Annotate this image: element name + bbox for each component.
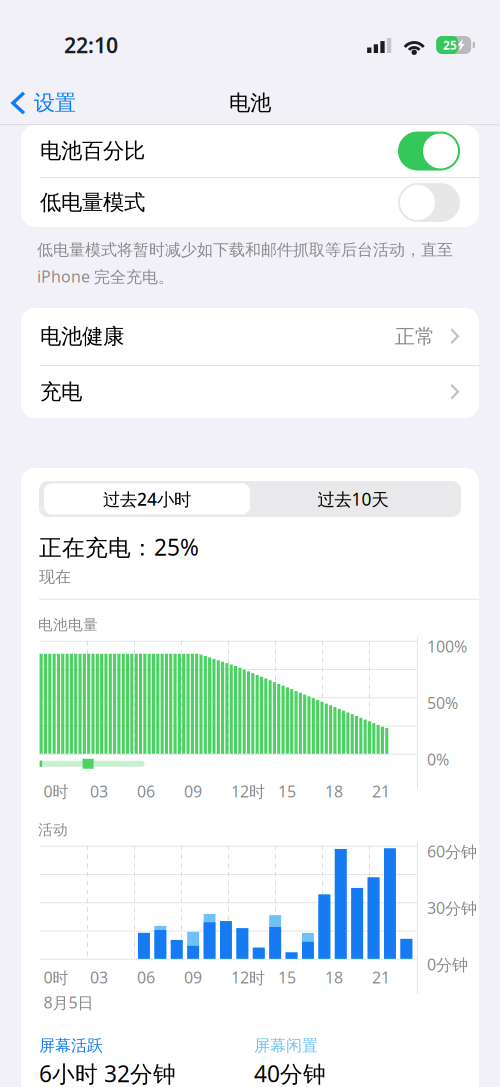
staticText: 12时 <box>231 967 265 988</box>
staticText: 60分钟 <box>427 841 477 862</box>
staticText: 03 <box>90 781 108 802</box>
staticText: 03 <box>90 967 108 988</box>
staticText: 21 <box>372 967 390 988</box>
button[interactable]: 过去10天 <box>250 483 456 514</box>
button[interactable]: 过去24小时 <box>44 483 250 514</box>
staticText: 6小时 32分钟 <box>39 1058 176 1087</box>
staticText: 30分钟 <box>427 897 477 918</box>
staticText: 18 <box>325 967 343 988</box>
staticText: 充电 <box>40 379 82 405</box>
staticText: 屏幕活跃 <box>39 1036 103 1055</box>
staticText: 06 <box>137 967 155 988</box>
button[interactable]: 低电量模式 <box>21 178 479 227</box>
staticText: 0% <box>427 749 449 770</box>
staticText: 0时 <box>44 781 69 802</box>
staticText: 活动 <box>38 821 68 839</box>
staticText: 电池健康 <box>40 323 124 350</box>
button[interactable]: 电池百分比 <box>21 125 479 177</box>
staticText: 100% <box>427 636 467 657</box>
staticText: 22:10 <box>64 31 118 59</box>
staticText: 现在 <box>39 567 71 587</box>
staticText: 屏幕闲置 <box>254 1036 318 1055</box>
staticText: iPhone 完全充电。 <box>37 266 174 287</box>
staticText: 过去10天 <box>317 487 388 510</box>
staticText: 12时 <box>231 781 265 802</box>
staticText: 低电量模式将暂时减少如下载和邮件抓取等后台活动，直至 <box>37 240 453 260</box>
staticText: 0时 <box>44 967 69 988</box>
staticText: 15 <box>278 967 296 988</box>
staticText: 09 <box>184 967 202 988</box>
staticText: 正在充电：25% <box>39 532 199 562</box>
staticText: 低电量模式 <box>40 189 145 216</box>
button[interactable]: 充电 <box>21 366 479 418</box>
staticText: 25 <box>443 37 457 53</box>
staticText: 过去24小时 <box>103 487 191 510</box>
staticText: 06 <box>137 781 155 802</box>
staticText: 8月5日 <box>44 992 94 1013</box>
staticText: 设置 <box>34 90 76 116</box>
staticText: 18 <box>325 781 343 802</box>
staticText: 电池百分比 <box>40 138 145 164</box>
staticText: 正常 <box>395 324 435 349</box>
staticText: 0分钟 <box>427 954 468 975</box>
staticText: 09 <box>184 781 202 802</box>
staticText: 40分钟 <box>254 1058 326 1087</box>
staticText: 50% <box>427 692 458 713</box>
button[interactable]: 设置 <box>0 79 86 127</box>
staticText: 电池电量 <box>38 616 98 634</box>
button[interactable]: 电池健康 <box>21 308 479 365</box>
staticText: 21 <box>372 781 390 802</box>
staticText: 15 <box>278 781 296 802</box>
staticText: 电池 <box>229 90 271 116</box>
